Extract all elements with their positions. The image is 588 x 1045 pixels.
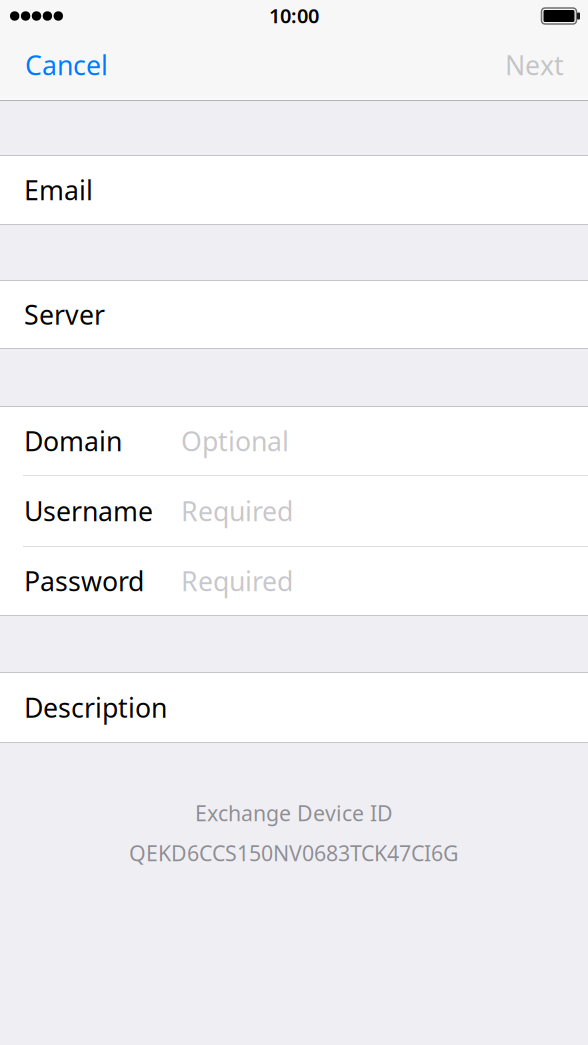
staticText: Exchange Device ID	[195, 799, 393, 827]
staticText: Password	[24, 563, 144, 599]
button[interactable]: Server	[0, 281, 588, 348]
staticText: Next	[505, 47, 564, 83]
staticText: 10:00	[269, 2, 319, 29]
staticText: Cancel	[25, 47, 108, 83]
button[interactable]: Email	[0, 156, 588, 224]
button[interactable]: Description	[0, 673, 588, 742]
staticText: Username	[24, 493, 153, 529]
button[interactable]: Domain	[0, 407, 588, 475]
staticText: QEKD6CCS150NV0683TCK47CI6G	[129, 839, 459, 867]
staticText: Email	[24, 172, 93, 208]
button[interactable]: Password	[0, 547, 588, 615]
staticText: Required	[181, 493, 293, 529]
staticText: Domain	[24, 423, 122, 459]
staticText: Description	[24, 690, 167, 725]
staticText: Required	[181, 563, 293, 599]
button[interactable]: Next	[491, 31, 588, 99]
button[interactable]: Username	[0, 476, 588, 546]
staticText: Server	[24, 297, 105, 332]
staticText: Optional	[181, 423, 289, 459]
button[interactable]: Cancel	[0, 31, 122, 99]
